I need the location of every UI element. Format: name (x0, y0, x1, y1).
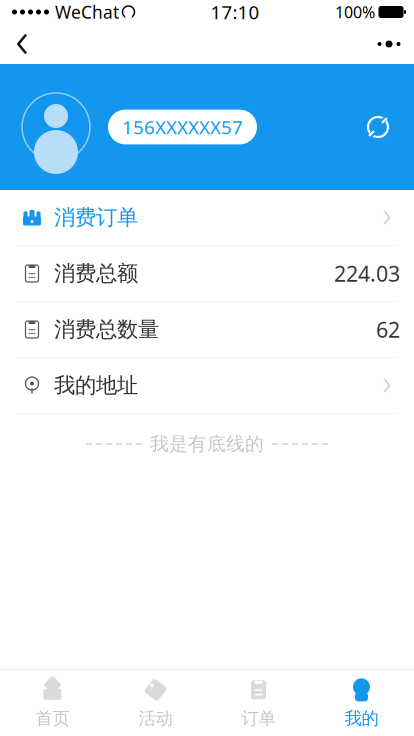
button[interactable]: 156XXXXXX57 (108, 110, 257, 144)
button[interactable]: Refresh (356, 105, 400, 149)
staticText: 17:10 (210, 0, 259, 24)
button[interactable]: 活动 (104, 670, 207, 736)
button[interactable]: 我的 (310, 670, 413, 736)
staticText: 我是有底线的 (150, 432, 264, 455)
button[interactable]: More (364, 24, 414, 64)
staticText: WeChat (55, 0, 119, 23)
button[interactable]: 消费订单 (0, 190, 414, 245)
button[interactable]: Back (0, 24, 44, 64)
staticText: 我的 (344, 708, 378, 729)
staticText: 消费总数量 (54, 316, 159, 343)
staticText: 订单 (241, 708, 275, 729)
staticText: 我的地址 (54, 372, 138, 399)
staticText: 62 (376, 315, 400, 344)
button[interactable]: 我的地址 (0, 358, 414, 413)
staticText: 224.03 (334, 259, 400, 288)
button[interactable]: 首页 (1, 670, 104, 736)
button[interactable]: 订单 (207, 670, 310, 736)
staticText: 活动 (138, 708, 172, 729)
staticText: 消费总额 (54, 260, 138, 287)
staticText: 消费订单 (54, 204, 138, 231)
staticText: 首页 (35, 708, 69, 729)
staticText: 100% (335, 1, 375, 23)
staticText: 156XXXXXX57 (122, 115, 243, 139)
